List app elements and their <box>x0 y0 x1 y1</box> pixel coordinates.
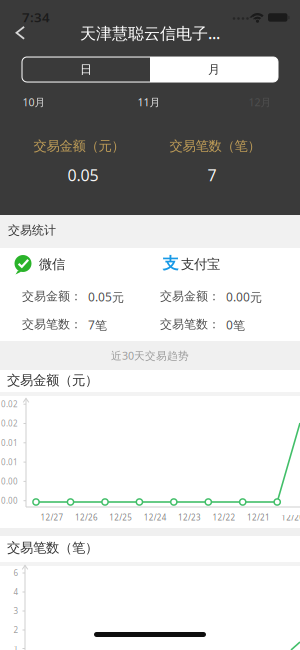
staticText: 交易笔数（笔） <box>7 539 98 556</box>
staticText: 2 <box>13 625 18 635</box>
staticText: 0.00元 <box>226 289 262 305</box>
staticText: 1 <box>13 643 18 650</box>
staticText: 0.02 <box>1 399 18 409</box>
staticText: 12月 <box>248 95 271 109</box>
staticText: 微信 <box>39 256 65 272</box>
staticText: 11月 <box>137 95 160 109</box>
button[interactable]: Back <box>15 26 25 40</box>
staticText: 12/26 <box>75 512 98 523</box>
staticText: 7 <box>207 164 216 186</box>
staticText: 交易金额（元） <box>7 372 98 388</box>
staticText: 天津慧聪云信电子... <box>80 22 220 44</box>
staticText: 交易笔数（笔） <box>169 138 260 154</box>
staticText: 日 <box>80 62 92 77</box>
staticText: 交易金额（元） <box>33 138 124 154</box>
staticText: 0.05 <box>67 164 98 186</box>
staticText: 6 <box>13 568 18 578</box>
staticText: 3 <box>13 606 18 616</box>
staticText: 12/20 <box>281 512 300 523</box>
button[interactable]: 10月 <box>22 95 45 109</box>
staticText: 7笔 <box>88 317 107 333</box>
staticText: 交易金额： <box>160 289 220 304</box>
button[interactable]: 月 <box>150 57 278 82</box>
staticText: 12/24 <box>144 512 167 523</box>
staticText: 12/25 <box>109 512 132 523</box>
staticText: 12/27 <box>40 512 63 523</box>
staticText: 0.02 <box>1 418 18 429</box>
staticText: 0.05元 <box>88 289 124 305</box>
staticText: 0.01 <box>1 437 18 448</box>
staticText: 交易统计 <box>8 223 56 238</box>
button[interactable]: 12月 <box>248 95 271 109</box>
staticText: 4 <box>13 587 18 597</box>
staticText: 交易金额： <box>22 289 82 304</box>
staticText: 0笔 <box>226 317 245 333</box>
staticText: 交易笔数： <box>22 317 82 332</box>
staticText: 支 <box>162 254 178 273</box>
staticText: 0.01 <box>1 457 18 467</box>
button[interactable]: 日 <box>22 57 150 82</box>
staticText: 12/21 <box>247 512 270 523</box>
staticText: 交易笔数： <box>160 317 220 332</box>
staticText: 12/23 <box>178 512 201 523</box>
staticText: 月 <box>208 62 220 77</box>
staticText: 近30天交易趋势 <box>111 348 189 363</box>
staticText: 0.00 <box>1 495 18 506</box>
staticText: 0.00 <box>1 476 18 487</box>
staticText: 12/22 <box>212 512 235 523</box>
staticText: 7:34 <box>22 8 50 26</box>
button[interactable]: 11月 <box>137 95 160 109</box>
staticText: 10月 <box>22 95 45 109</box>
staticText: 支付宝 <box>181 256 220 272</box>
